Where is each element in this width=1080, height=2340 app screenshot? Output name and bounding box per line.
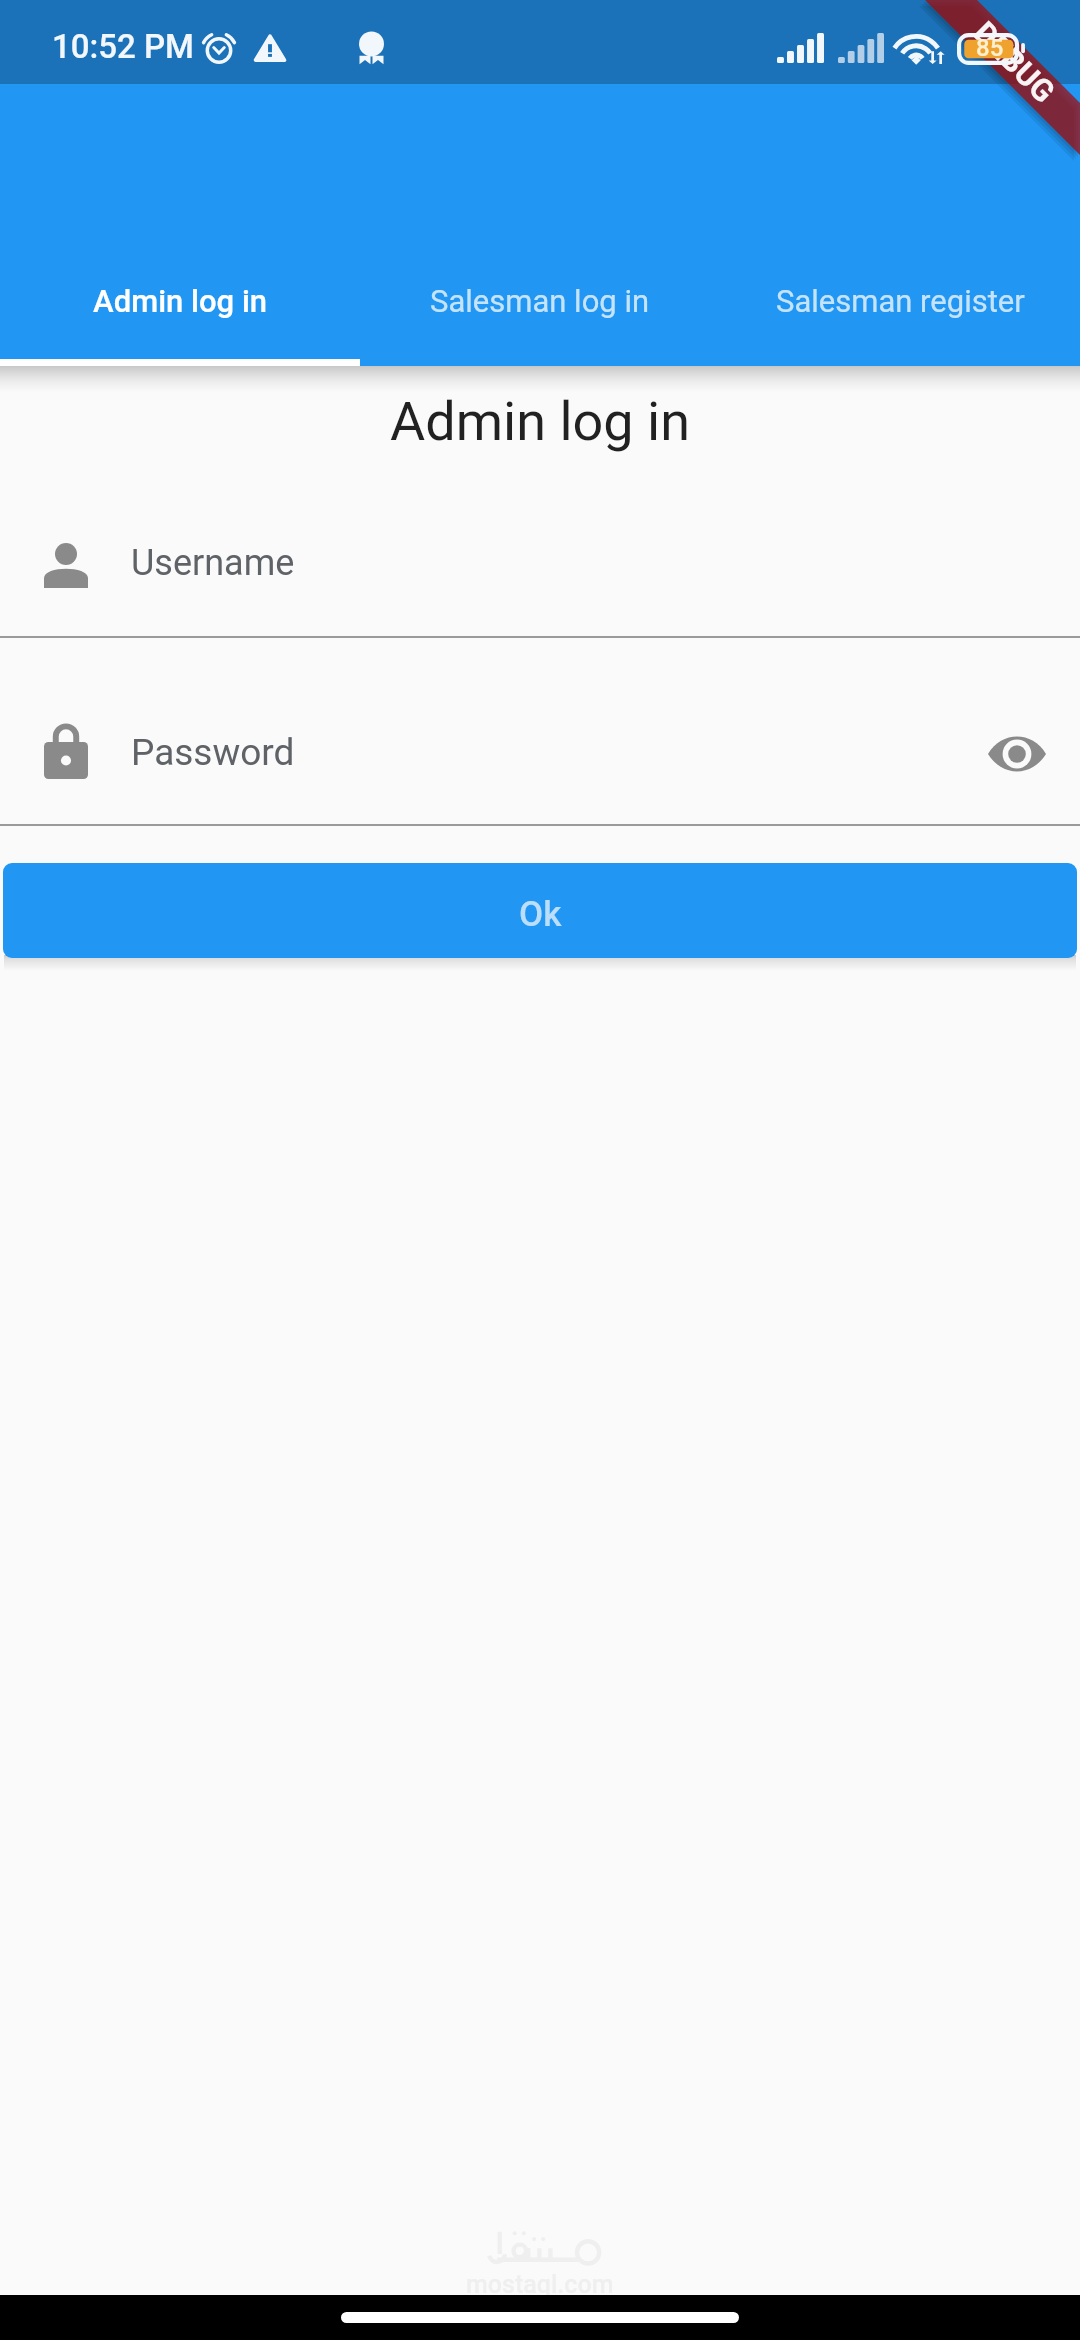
staticText: Salesman log in <box>430 283 650 319</box>
button[interactable]: Salesman log in <box>360 256 720 366</box>
button[interactable]: Username <box>0 512 1080 637</box>
button[interactable]: Admin log in <box>0 256 360 366</box>
staticText: Ok <box>519 894 562 935</box>
staticText: Username <box>131 542 295 584</box>
staticText: Salesman register <box>776 283 1025 319</box>
staticText: Password <box>131 731 295 774</box>
staticText: Admin log in <box>93 283 268 319</box>
button[interactable]: Salesman register <box>720 256 1080 366</box>
button[interactable]: Show password <box>972 709 1062 799</box>
staticText: 85 <box>976 34 1004 62</box>
staticText: mostaql.com <box>466 2270 614 2299</box>
staticText: Admin log in <box>390 390 690 453</box>
button[interactable]: Ok <box>3 863 1077 958</box>
button[interactable]: Password <box>0 700 1080 825</box>
staticText: DEBUG <box>967 14 1062 110</box>
staticText: 10:52 PM <box>52 27 194 66</box>
